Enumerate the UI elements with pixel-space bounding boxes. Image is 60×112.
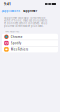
staticText: Supprimer [23,9,37,13]
button[interactable]: Spotify [2,40,58,46]
button[interactable]: Mes Fichiers [2,46,58,52]
button[interactable]: ‹ [0,8,21,14]
staticText: APPS RÉCENTES [5,30,19,33]
staticText: pourrez la réinstaller plus tard. [4,24,44,28]
staticText: Chrome [11,35,23,39]
staticText: et données seront conservés. Vous [4,21,47,25]
staticText: Mes Fichiers [11,47,28,51]
staticText: 9:41 [4,2,11,6]
staticText: ‹ [1,8,2,14]
button[interactable]: Chrome [2,34,58,40]
staticText: votre iPhone, mais ses documents [4,19,47,22]
staticText: Supprimer cette app la retirera de [4,16,45,19]
staticText: Applications [3,9,20,13]
staticText: Spotify [11,41,21,45]
